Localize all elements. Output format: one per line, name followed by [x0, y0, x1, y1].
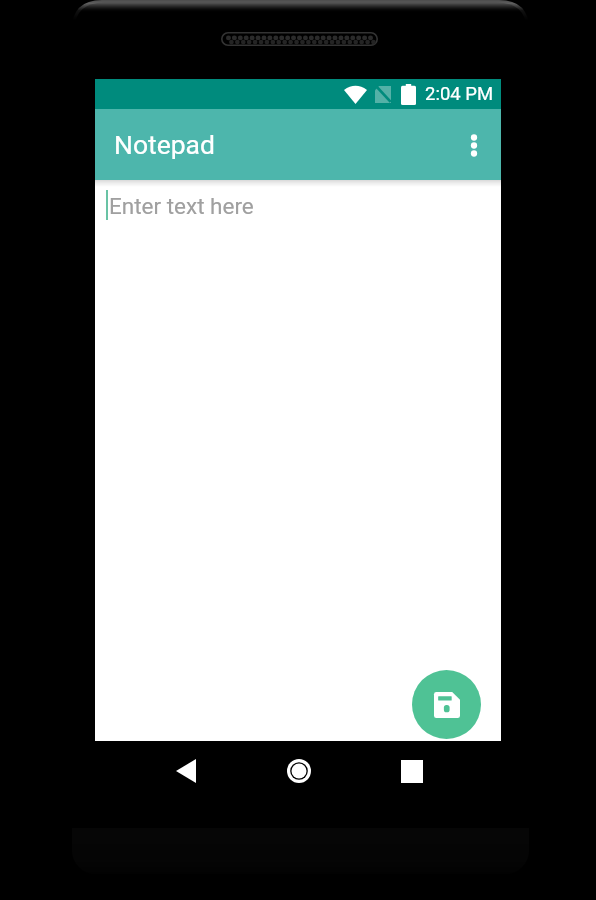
button[interactable]: Save note [412, 670, 481, 739]
staticText: 2:04 PM [425, 83, 494, 105]
button[interactable]: Enter text here [95, 180, 501, 741]
staticText: Enter text here [109, 193, 254, 219]
button[interactable]: Back [162, 747, 210, 795]
staticText: Notepad [114, 129, 215, 160]
button[interactable]: Recent apps [388, 747, 436, 795]
button[interactable]: Home [275, 747, 323, 795]
button[interactable]: More options [450, 121, 498, 169]
